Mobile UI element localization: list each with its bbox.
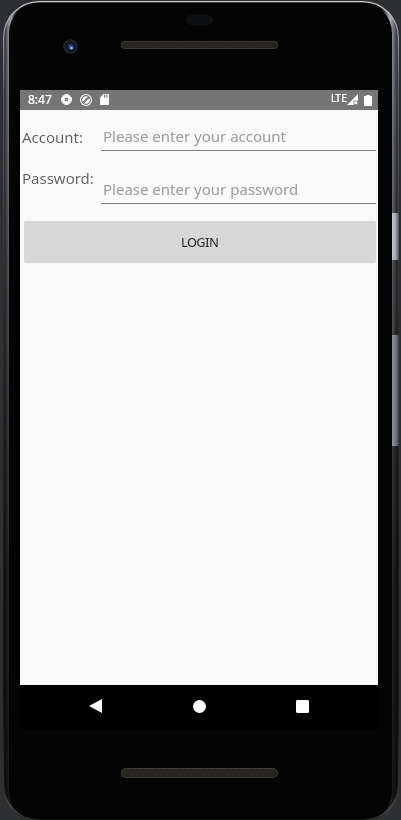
staticText: LTE xyxy=(331,91,348,105)
staticText: Password: xyxy=(22,168,94,188)
staticText: Please enter your account xyxy=(103,126,287,146)
button[interactable]: Recent apps xyxy=(284,688,320,724)
staticText: LOGIN xyxy=(181,233,219,250)
staticText: Please enter your password xyxy=(103,179,299,199)
button[interactable]: Home xyxy=(181,688,217,724)
button[interactable]: LOGIN xyxy=(24,221,376,263)
button[interactable]: Back xyxy=(77,688,113,724)
staticText: 8:47 xyxy=(28,91,52,107)
staticText: Account: xyxy=(22,127,84,147)
